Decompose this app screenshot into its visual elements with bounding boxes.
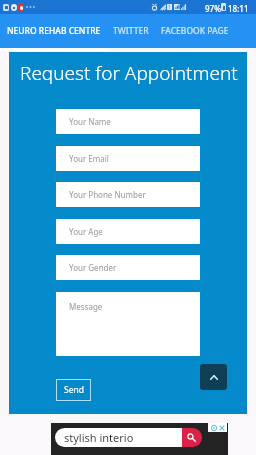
staticText: FACEBOOK PAGE [161,25,229,37]
button[interactable]: Ad choices [208,423,227,432]
staticText: stylish interio [64,430,134,445]
button[interactable]: NEURO REHAB CENTRE [0,14,107,48]
staticText: NEURO REHAB CENTRE [7,25,101,37]
button[interactable]: Your Phone Number [56,182,200,207]
staticText: Message [69,301,103,312]
staticText: Your Phone Number [69,189,146,200]
staticText: Request for Appointment [20,60,238,86]
button[interactable]: Search [182,428,202,447]
staticText: Your Gender [69,262,117,273]
button[interactable]: stylish interio [55,428,183,447]
staticText: 1 [168,4,171,10]
staticText: 18:11 [228,3,249,14]
button[interactable]: Scroll to top [200,364,227,390]
staticText: Send [64,384,84,396]
button[interactable]: Your Email [56,146,200,171]
staticText: Your Email [69,153,109,164]
button[interactable]: Your Gender [56,255,200,280]
button[interactable]: Message [56,292,200,356]
button[interactable]: TWITTER [107,14,154,48]
button[interactable]: Your Name [56,109,200,134]
staticText: Your Name [69,116,111,127]
staticText: 97% [205,3,221,14]
button[interactable]: Send [56,379,91,401]
staticText: Your Age [69,226,103,237]
button[interactable]: Your Age [56,219,200,244]
button[interactable]: FACEBOOK PAGE [154,14,235,48]
staticText: TWITTER [113,25,149,37]
